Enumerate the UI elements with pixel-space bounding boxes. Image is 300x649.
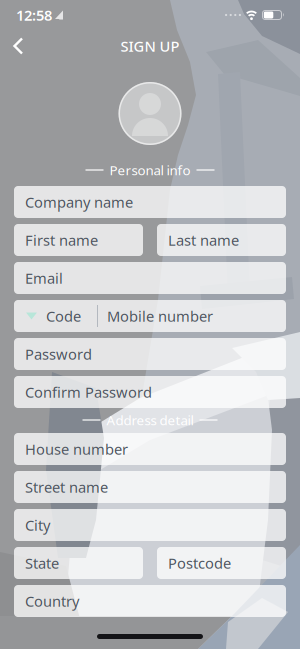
staticText: SIGN UP bbox=[120, 36, 179, 56]
staticText: House number bbox=[25, 439, 128, 459]
button[interactable]: Add profile photo bbox=[118, 82, 181, 145]
staticText: Confirm Password bbox=[25, 382, 152, 402]
button[interactable]: Postcode bbox=[157, 547, 286, 579]
button[interactable]: Country bbox=[14, 585, 286, 617]
staticText: Personal info bbox=[109, 161, 190, 179]
staticText: Password bbox=[25, 344, 92, 364]
button[interactable]: Street name bbox=[14, 471, 286, 503]
staticText: Mobile number bbox=[107, 306, 213, 326]
button[interactable]: Email bbox=[14, 262, 286, 294]
button[interactable]: State bbox=[14, 547, 143, 579]
staticText: State bbox=[25, 553, 59, 573]
staticText: Address detail bbox=[106, 411, 193, 429]
button[interactable]: Last name bbox=[157, 224, 286, 256]
staticText: Country bbox=[25, 591, 79, 611]
button[interactable]: Company name bbox=[14, 186, 286, 218]
button[interactable]: City bbox=[14, 509, 286, 541]
staticText: First name bbox=[25, 230, 98, 250]
staticText: Postcode bbox=[168, 553, 231, 573]
button[interactable]: House number bbox=[14, 433, 286, 465]
button[interactable]: First name bbox=[14, 224, 143, 256]
staticText: 12:58 bbox=[16, 5, 52, 25]
staticText: Company name bbox=[25, 192, 133, 212]
staticText: Email bbox=[25, 268, 63, 288]
staticText: Last name bbox=[168, 230, 239, 250]
button[interactable]: Password bbox=[14, 338, 286, 370]
staticText: Code bbox=[46, 306, 81, 326]
button[interactable]: Confirm Password bbox=[14, 376, 286, 408]
button[interactable]: Code bbox=[14, 300, 286, 332]
staticText: City bbox=[25, 515, 50, 535]
staticText: Street name bbox=[25, 477, 108, 497]
button[interactable]: Back bbox=[0, 38, 23, 53]
